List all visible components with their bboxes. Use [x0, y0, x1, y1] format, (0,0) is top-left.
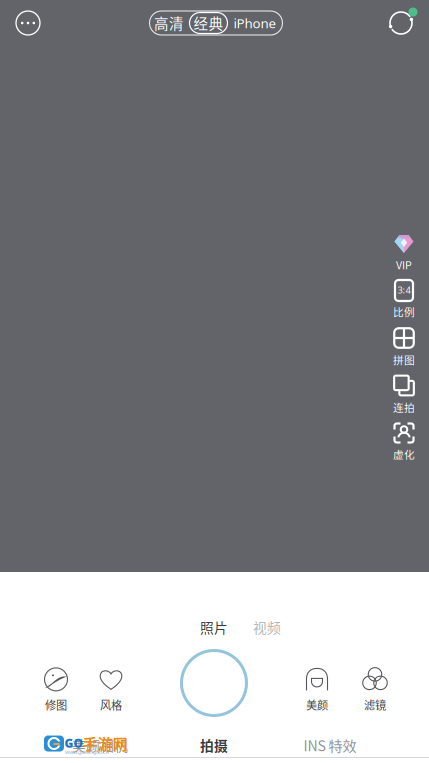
- button[interactable]: 连拍: [382, 374, 426, 414]
- button[interactable]: 滤镜: [352, 668, 398, 712]
- staticText: 美颜相机: [72, 735, 128, 755]
- staticText: INS 特效: [303, 735, 356, 755]
- staticText: 照片: [200, 617, 228, 637]
- staticText: 3:4: [397, 284, 410, 296]
- button[interactable]: 比例: [382, 279, 426, 319]
- button[interactable]: 经典: [189, 12, 227, 33]
- staticText: 经典: [193, 12, 223, 33]
- button[interactable]: 美颜相机: [57, 732, 143, 758]
- button[interactable]: 美颜: [294, 668, 340, 712]
- button[interactable]: Take photo: [177, 646, 251, 720]
- staticText: 拼图: [393, 352, 415, 367]
- button[interactable]: VIP: [382, 232, 426, 272]
- staticText: 连拍: [393, 399, 415, 415]
- staticText: 滤镜: [364, 696, 386, 713]
- staticText: 修图: [45, 696, 67, 713]
- staticText: 风格: [100, 696, 122, 713]
- button[interactable]: 修图: [33, 668, 79, 712]
- staticText: 高清: [154, 12, 184, 33]
- button[interactable]: More options: [8, 3, 48, 43]
- button[interactable]: 视频: [245, 615, 289, 639]
- button[interactable]: Switch camera: [381, 3, 421, 43]
- staticText: 虚化: [393, 446, 415, 462]
- staticText: 比例: [393, 304, 415, 319]
- staticText: iPhone: [233, 14, 276, 32]
- button[interactable]: 高清: [150, 11, 188, 35]
- button[interactable]: INS 特效: [287, 732, 373, 758]
- staticText: GO: [64, 735, 83, 751]
- button[interactable]: iPhone: [231, 11, 279, 35]
- button[interactable]: 风格: [88, 668, 134, 712]
- staticText: VIP: [396, 257, 412, 272]
- staticText: 拍摄: [200, 735, 228, 755]
- button[interactable]: 照片: [192, 615, 236, 639]
- staticText: 视频: [253, 617, 281, 637]
- button[interactable]: 拍摄: [179, 732, 249, 758]
- staticText: www.gosanguo.cn: [65, 748, 109, 756]
- staticText: 手游网: [82, 732, 127, 754]
- button[interactable]: 虚化: [382, 421, 426, 461]
- staticText: 美颜: [306, 696, 328, 713]
- button[interactable]: 拼图: [382, 326, 426, 366]
